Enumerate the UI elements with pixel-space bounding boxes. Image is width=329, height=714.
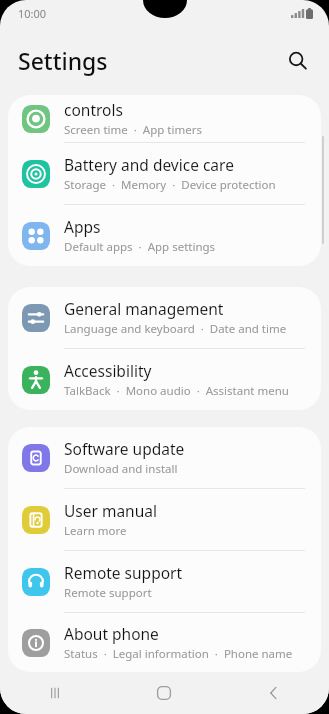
staticText: TalkBack · Mono audio · Assistant menu [64, 383, 289, 399]
staticText: Battery and device care [64, 154, 234, 175]
button[interactable]: About phone [8, 613, 321, 672]
staticText: controls [64, 99, 123, 120]
button[interactable]: Back [219, 672, 329, 714]
button[interactable]: Remote support [8, 551, 321, 613]
staticText: Screen time · App timers [64, 122, 202, 138]
button[interactable]: controls [8, 95, 321, 143]
staticText: Apps [64, 216, 101, 237]
button[interactable]: Software update [8, 427, 321, 489]
staticText: Language and keyboard · Date and time [64, 321, 287, 337]
staticText: Remote support [64, 562, 183, 583]
button[interactable]: Battery and device care [8, 143, 321, 205]
staticText: 10:00 [18, 6, 47, 21]
staticText: Status · Legal information · Phone name [64, 646, 293, 662]
staticText: General management [64, 298, 224, 319]
button[interactable]: Accessibility [8, 349, 321, 410]
button[interactable]: Apps [8, 205, 321, 266]
staticText: About phone [64, 623, 159, 644]
button[interactable]: General management [8, 287, 321, 349]
staticText: User manual [64, 500, 157, 521]
staticText: Learn more [64, 523, 127, 539]
staticText: Default apps · App settings [64, 239, 216, 255]
button[interactable]: Home [109, 672, 219, 714]
staticText: Settings [18, 45, 108, 76]
staticText: Storage · Memory · Device protection [64, 177, 276, 193]
staticText: Download and install [64, 461, 178, 477]
button[interactable]: User manual [8, 489, 321, 551]
button[interactable]: Search [277, 40, 317, 80]
staticText: Software update [64, 438, 185, 459]
staticText: Accessibility [64, 360, 152, 381]
button[interactable]: Recent apps [0, 672, 109, 714]
staticText: Remote support [64, 585, 152, 601]
